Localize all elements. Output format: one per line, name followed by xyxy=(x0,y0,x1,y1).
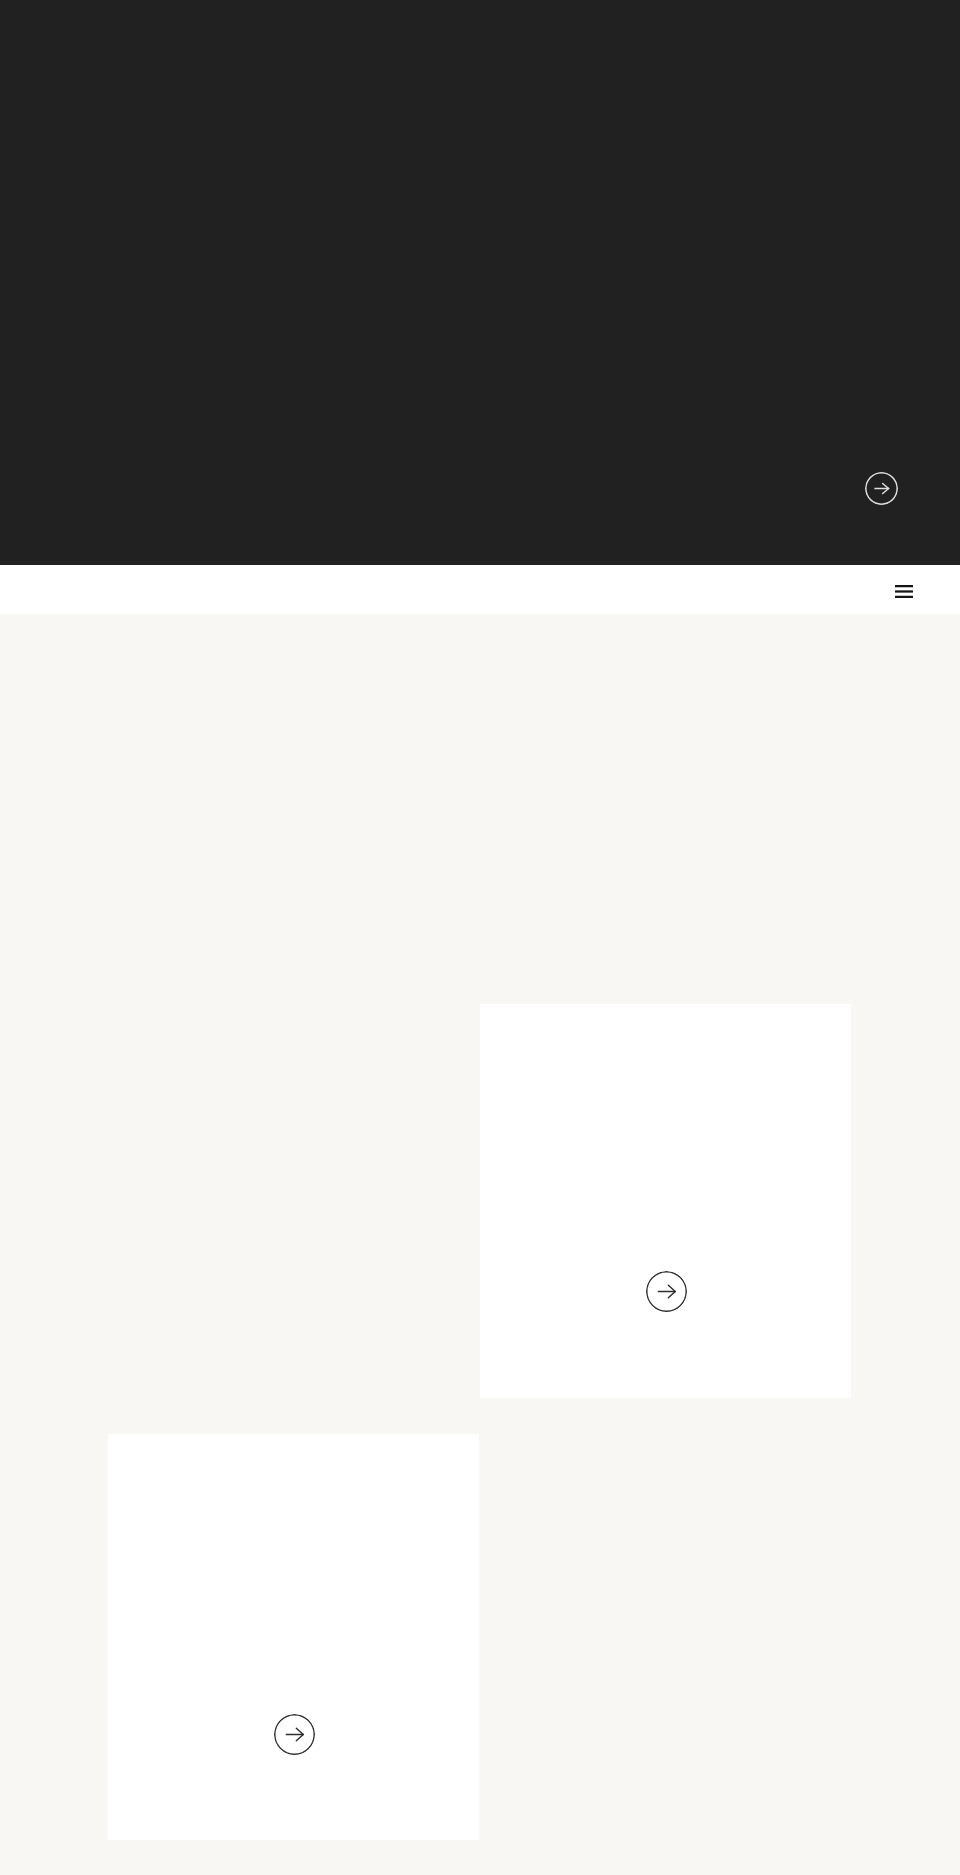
button[interactable]: Open second story xyxy=(274,1714,315,1755)
button[interactable]: Explore xyxy=(865,472,898,505)
button[interactable]: Menu xyxy=(880,567,928,615)
button[interactable]: Open first story xyxy=(646,1271,687,1312)
button[interactable]: Open second story xyxy=(108,1434,479,1840)
button[interactable]: Open first story xyxy=(480,1004,851,1398)
